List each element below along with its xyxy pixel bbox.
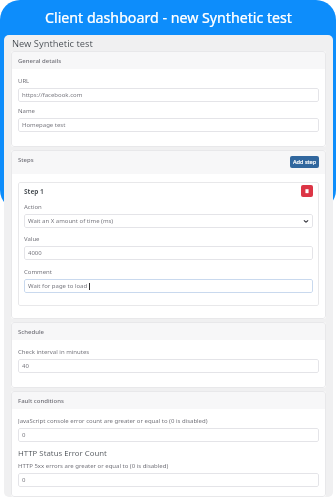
staticText: Fault conditions xyxy=(18,397,64,405)
staticText: Comment xyxy=(24,268,52,275)
staticText: HTTP 5xx errors are greater or equal to … xyxy=(18,462,169,469)
staticText: Wait an X amount of time (ms) xyxy=(28,217,114,225)
staticText: Value xyxy=(24,235,40,242)
button[interactable]: 0 xyxy=(18,428,319,442)
staticText: 40 xyxy=(22,362,29,370)
button[interactable]: Wait an X amount of time (ms) xyxy=(24,214,313,228)
button[interactable]: 40 xyxy=(18,359,319,373)
staticText: Client dashboard - new Synthetic test xyxy=(45,8,292,27)
button[interactable]: Add step xyxy=(290,156,319,168)
staticText: Wait for page to load xyxy=(28,282,88,290)
staticText: Check interval in minutes xyxy=(18,348,90,355)
staticText: New Synthetic test xyxy=(12,37,93,50)
staticText: https://facebook.com xyxy=(22,91,83,99)
staticText: Schedule xyxy=(18,328,44,336)
staticText: Add step xyxy=(293,158,317,166)
staticText: JavaScript console error count are great… xyxy=(18,417,208,424)
button[interactable]: Homepage test xyxy=(18,118,319,132)
staticText: URL xyxy=(18,77,30,84)
staticText: 0 xyxy=(22,476,26,484)
staticText: 0 xyxy=(22,431,26,439)
button[interactable]: https://facebook.com xyxy=(18,88,319,102)
staticText: General details xyxy=(18,57,62,65)
staticText: Step 1 xyxy=(24,187,44,196)
button[interactable]: Delete step xyxy=(301,185,313,197)
button[interactable]: 0 xyxy=(18,473,319,487)
button[interactable]: 4000 xyxy=(24,246,313,260)
staticText: 4000 xyxy=(28,249,42,257)
staticText: Name xyxy=(18,107,35,114)
staticText: HTTP Status Error Count xyxy=(18,448,107,459)
staticText: Homepage test xyxy=(22,121,66,129)
staticText: Action xyxy=(24,203,42,210)
button[interactable]: Wait for page to load xyxy=(24,279,313,293)
staticText: Steps xyxy=(18,156,34,164)
